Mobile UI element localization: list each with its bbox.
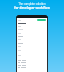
- staticText: The complete solution: [18, 2, 46, 6]
- staticText: for developer workflow: [14, 6, 50, 10]
- button[interactable]: Get started: [37, 19, 46, 21]
